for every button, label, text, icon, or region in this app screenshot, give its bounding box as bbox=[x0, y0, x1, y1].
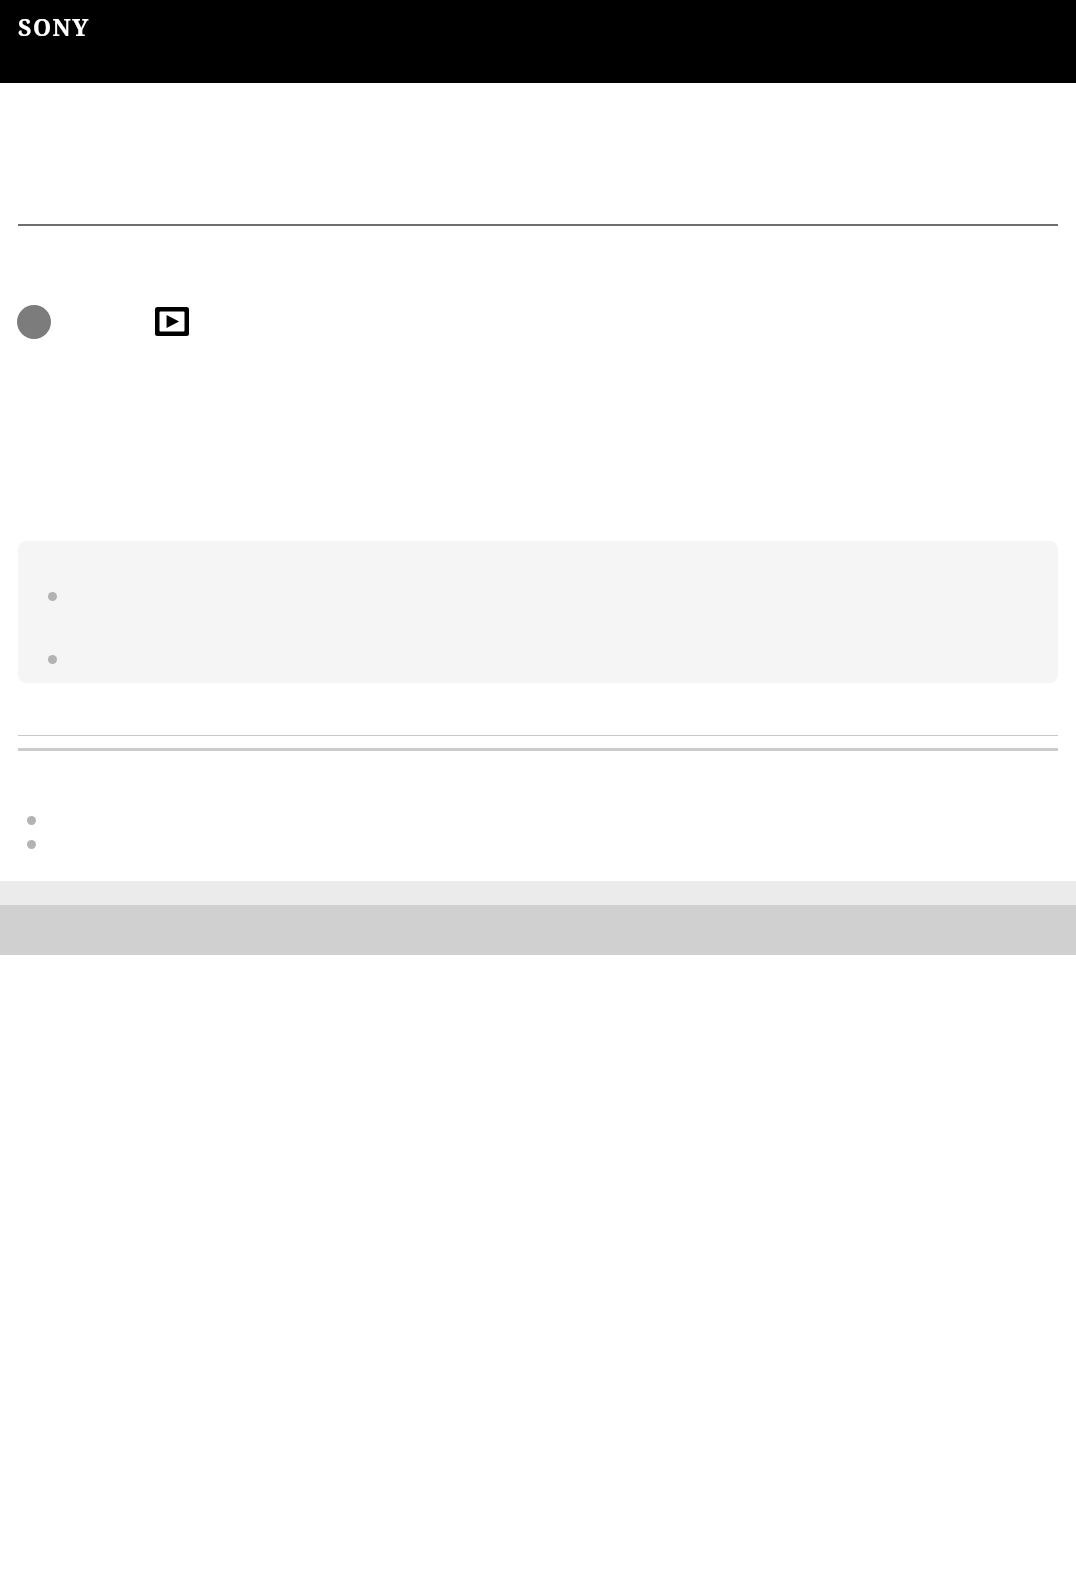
button[interactable]: Step 1 bbox=[17, 305, 51, 339]
button[interactable]: Sony home bbox=[18, 11, 90, 42]
staticText: SONY bbox=[18, 11, 90, 42]
button[interactable] bbox=[27, 834, 1047, 860]
button[interactable]: Playback bbox=[155, 307, 189, 336]
button[interactable] bbox=[27, 807, 1047, 833]
